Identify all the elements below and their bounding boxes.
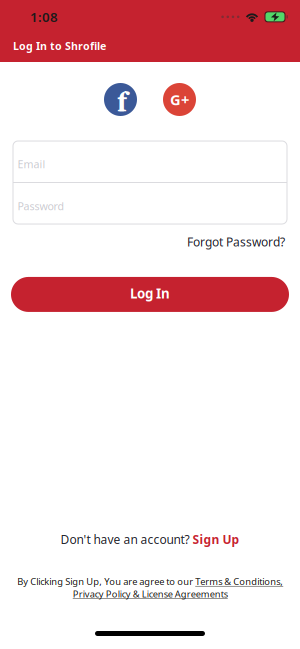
button[interactable]: By Clicking Sign Up, You are agree to ou… [6,575,294,600]
staticText: Log In [130,285,170,302]
button[interactable]: Don't have an account? [60,531,239,547]
button[interactable]: Log in with Facebook [104,83,137,116]
staticText: Log In to Shrofile [13,39,106,53]
button[interactable]: Password [13,183,287,224]
staticText: G+ [170,90,189,109]
staticText: f [117,82,127,121]
button[interactable]: Forgot Password? [187,234,285,250]
staticText: By Clicking Sign Up, You are agree to ou… [17,575,283,600]
staticText: Password [17,199,64,213]
staticText: Don't have an account? [60,531,192,547]
staticText: 1:08 [30,8,58,26]
button[interactable]: Email [13,141,287,182]
button[interactable]: Log in with Google [163,83,196,116]
button[interactable]: Log In [11,277,289,312]
staticText: Forgot Password? [187,234,285,250]
staticText: Sign Up [192,531,239,547]
staticText: Email [17,157,45,171]
